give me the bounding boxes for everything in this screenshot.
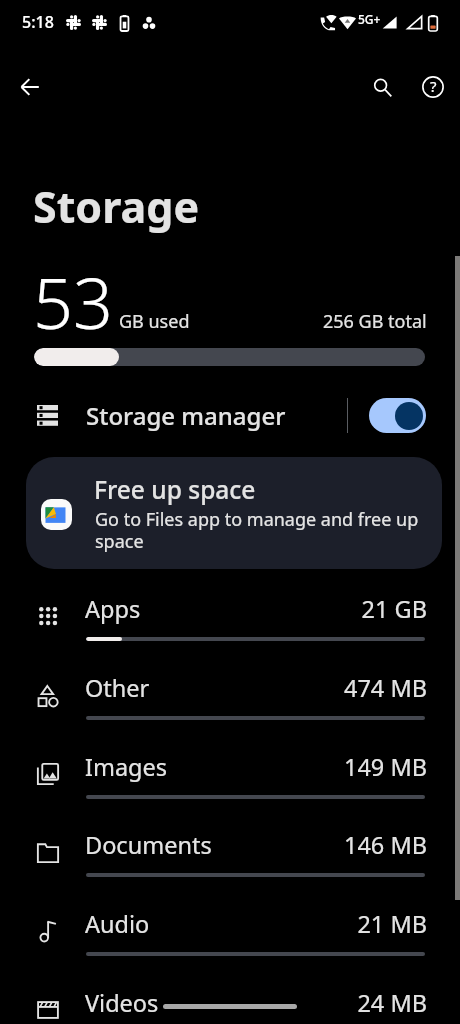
staticText: 146 MB xyxy=(0,829,427,861)
button[interactable]: Audio xyxy=(0,894,460,972)
staticText: Apps xyxy=(85,593,141,625)
staticText: 149 MB xyxy=(0,751,427,783)
staticText: ? xyxy=(430,76,437,96)
button[interactable]: Help xyxy=(409,63,457,111)
staticText: 474 MB xyxy=(0,672,427,704)
button[interactable]: Storage manager toggle xyxy=(369,398,426,433)
button[interactable]: Other xyxy=(0,658,460,736)
staticText: Images xyxy=(85,751,168,783)
staticText: Storage xyxy=(33,177,200,236)
button[interactable]: Back xyxy=(6,63,54,111)
staticText: 21 MB xyxy=(0,908,427,940)
staticText: 24 MB xyxy=(0,987,427,1019)
staticText: 5G+ xyxy=(358,11,381,27)
staticText: 5:18 xyxy=(22,11,54,33)
staticText: GB used xyxy=(119,309,190,334)
staticText: 256 GB total xyxy=(323,309,427,334)
staticText: Storage manager xyxy=(86,399,286,432)
button[interactable]: Storage manager xyxy=(0,387,460,443)
staticText: 21 GB xyxy=(0,593,427,625)
staticText: Audio xyxy=(85,908,150,940)
button[interactable]: Images xyxy=(0,737,460,815)
button[interactable]: Apps xyxy=(0,579,460,657)
button[interactable]: Free up space xyxy=(26,457,442,569)
staticText: Go to Files app to manage and free up sp… xyxy=(95,507,430,553)
button[interactable]: Documents xyxy=(0,815,460,893)
staticText: Other xyxy=(85,672,150,704)
staticText: Documents xyxy=(85,829,212,861)
staticText: Videos xyxy=(85,987,159,1019)
button[interactable]: Videos xyxy=(0,973,460,1024)
staticText: 53 xyxy=(33,254,113,349)
staticText: Free up space xyxy=(94,473,256,506)
button[interactable]: Search xyxy=(358,63,406,111)
